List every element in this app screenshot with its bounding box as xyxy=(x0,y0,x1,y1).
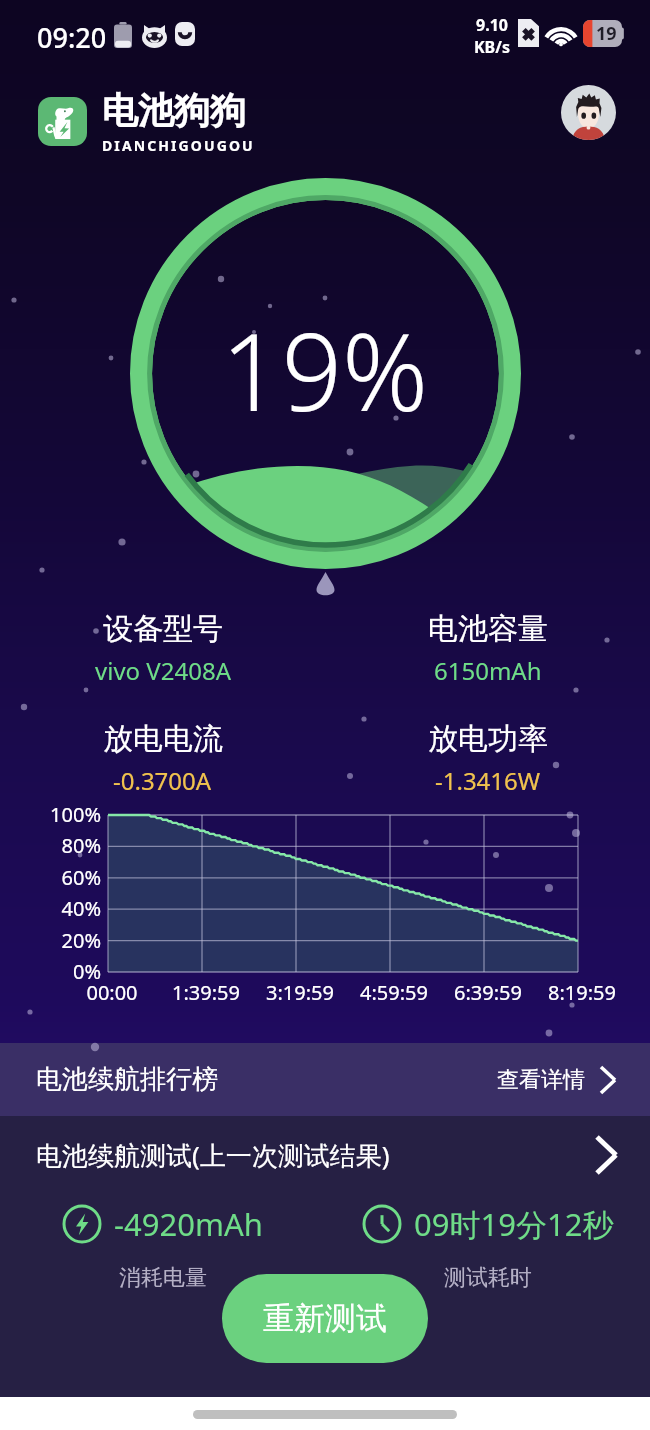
staticText: -1.3416W xyxy=(435,764,541,797)
staticText: 电池续航排行榜 xyxy=(36,1063,218,1096)
button[interactable]: 电池续航测试(上一次测试结果) xyxy=(0,1116,650,1194)
staticText: -0.3700A xyxy=(113,764,212,797)
staticText: vivo V2408A xyxy=(95,654,231,687)
staticText: 19 xyxy=(596,21,617,46)
staticText: 19% xyxy=(221,298,429,442)
button[interactable]: Profile xyxy=(561,85,616,140)
staticText: 9.10 xyxy=(476,14,508,36)
staticText: 40% xyxy=(20,895,101,922)
staticText: 设备型号 xyxy=(103,610,223,648)
staticText: 6150mAh xyxy=(434,654,542,687)
staticText: 80% xyxy=(20,832,101,859)
staticText: 8:19:59 xyxy=(532,979,632,1006)
staticText: 60% xyxy=(20,864,101,891)
staticText: KB/s xyxy=(474,36,510,58)
staticText: 消耗电量 xyxy=(119,1264,207,1292)
button[interactable]: App logo xyxy=(38,97,87,146)
staticText: 09:20 xyxy=(37,19,107,56)
staticText: 放电电流 xyxy=(103,720,223,758)
staticText: 放电功率 xyxy=(428,720,548,758)
staticText: 4:59:59 xyxy=(344,979,444,1006)
staticText: 1:39:59 xyxy=(156,979,256,1006)
staticText: 重新测试 xyxy=(263,1299,387,1338)
staticText: 电池容量 xyxy=(428,610,548,648)
staticText: -4920mAh xyxy=(114,1203,263,1245)
staticText: 3:19:59 xyxy=(250,979,350,1006)
button[interactable]: 电池续航排行榜 xyxy=(0,1043,650,1116)
staticText: 00:00 xyxy=(62,979,162,1006)
staticText: 查看详情 xyxy=(497,1066,585,1094)
button[interactable]: 重新测试 xyxy=(222,1274,428,1363)
staticText: 6:39:59 xyxy=(438,979,538,1006)
staticText: 100% xyxy=(20,801,101,828)
staticText: 测试耗时 xyxy=(444,1264,532,1292)
staticText: 电池续航测试(上一次测试结果) xyxy=(36,1137,390,1173)
staticText: 09时19分12秒 xyxy=(414,1203,614,1245)
staticText: 0% xyxy=(20,958,101,985)
staticText: 20% xyxy=(20,927,101,954)
staticText: DIANCHIGOUGOU xyxy=(102,136,255,155)
other: Details xyxy=(594,1133,620,1177)
staticText: 电池狗狗 xyxy=(102,88,246,133)
